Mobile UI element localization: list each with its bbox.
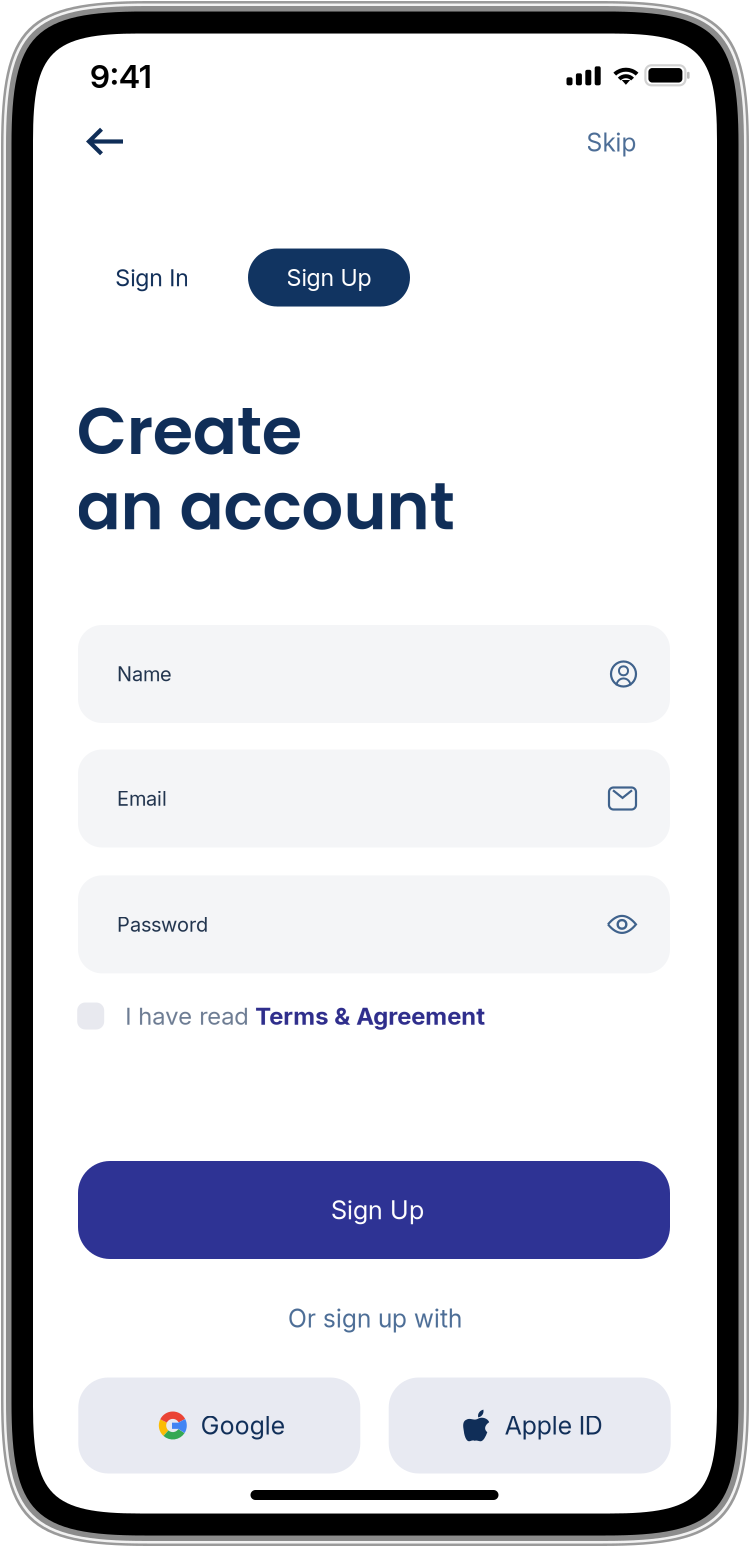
staticText: I have read — [125, 1001, 255, 1030]
staticText: Skip — [586, 128, 636, 157]
button[interactable]: Name — [78, 625, 670, 723]
staticText: an account — [76, 461, 454, 552]
staticText: Terms & Agreement — [255, 1001, 485, 1030]
staticText: Name — [117, 662, 172, 686]
button[interactable]: I have read — [77, 996, 527, 1036]
button[interactable]: Password — [78, 875, 670, 973]
staticText: Create — [77, 385, 302, 477]
staticText: 9:41 — [90, 57, 152, 96]
staticText: Sign Up — [331, 1195, 424, 1225]
staticText: Apple ID — [505, 1410, 603, 1441]
staticText: Google — [201, 1410, 285, 1441]
staticText: Sign Up — [286, 263, 371, 292]
button[interactable]: Apple ID — [389, 1377, 671, 1473]
button[interactable]: Sign Up — [248, 248, 410, 306]
staticText: Password — [117, 912, 208, 936]
button[interactable]: Back — [69, 113, 141, 169]
button[interactable]: Google — [78, 1377, 360, 1473]
button[interactable]: Sign In — [95, 249, 209, 307]
button[interactable]: Email — [78, 749, 670, 847]
button[interactable]: Sign Up — [78, 1161, 670, 1259]
button[interactable]: Skip — [568, 114, 654, 170]
staticText: Email — [117, 786, 167, 811]
staticText: Sign In — [115, 264, 189, 292]
staticText: Or sign up with — [288, 1304, 462, 1333]
